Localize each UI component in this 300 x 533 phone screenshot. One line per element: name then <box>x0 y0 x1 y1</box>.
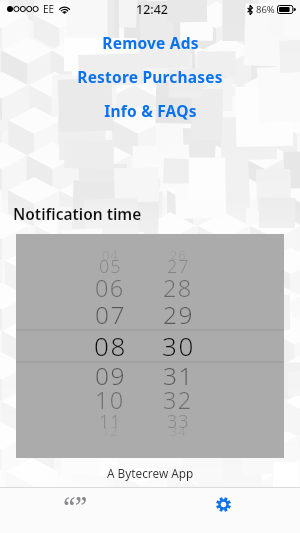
staticText: 04 <box>102 246 119 264</box>
staticText: 28 <box>163 272 193 302</box>
staticText: Remove Ads <box>102 32 199 53</box>
staticText: 31 <box>163 359 194 389</box>
staticText: 34 <box>170 422 187 440</box>
staticText: 26 <box>170 246 187 264</box>
staticText: EE <box>43 2 55 16</box>
button[interactable]: Remove Ads <box>0 32 300 53</box>
button[interactable]: Settings <box>150 487 300 533</box>
staticText: 86% <box>256 3 275 16</box>
button[interactable]: Info & FAQs <box>0 100 300 121</box>
staticText: 33 <box>167 409 190 434</box>
staticText: “” <box>63 488 88 525</box>
staticText: 27 <box>167 254 190 279</box>
staticText: 10 <box>95 384 125 414</box>
staticText: 12 <box>102 422 119 440</box>
staticText: 29 <box>163 298 194 328</box>
staticText: 06 <box>95 272 125 302</box>
staticText: 05 <box>99 254 122 279</box>
staticText: Info & FAQs <box>104 100 197 121</box>
button[interactable]: Quotes <box>0 487 150 533</box>
staticText: 32 <box>163 384 193 414</box>
staticText: 12:42 <box>136 1 169 18</box>
button[interactable]: Restore Purchases <box>0 66 300 87</box>
staticText: 09 <box>95 359 126 389</box>
staticText: 07 <box>95 298 126 328</box>
staticText: A Bytecrew App <box>107 465 194 481</box>
staticText: Notification time <box>13 203 142 224</box>
staticText: 11 <box>99 409 122 434</box>
staticText: 08 <box>94 328 127 358</box>
staticText: Restore Purchases <box>77 66 223 87</box>
staticText: 30 <box>162 328 195 358</box>
